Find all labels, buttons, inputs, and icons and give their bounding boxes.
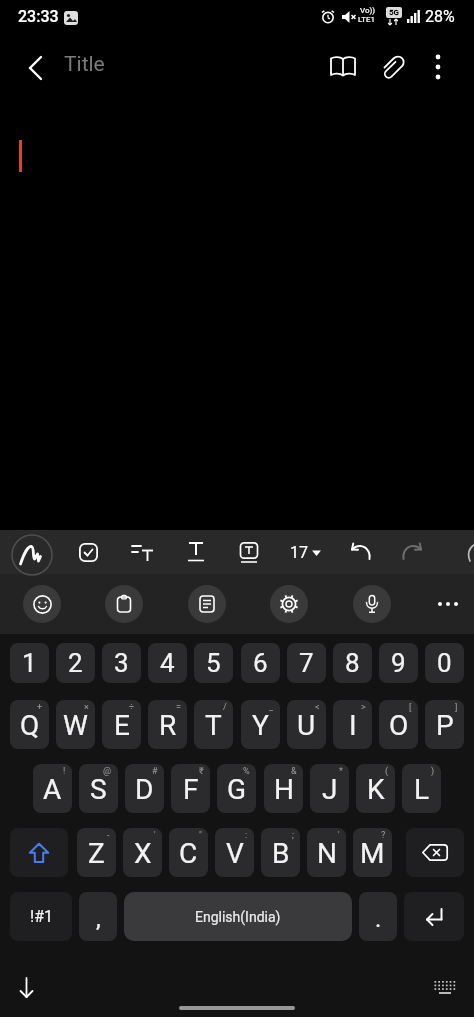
- staticText: .: [375, 905, 382, 933]
- button[interactable]: 6: [241, 643, 280, 683]
- button[interactable]: [10, 828, 68, 877]
- staticText: ]: [455, 702, 458, 713]
- button[interactable]: [123, 532, 163, 572]
- staticText: -: [107, 830, 110, 841]
- button[interactable]: [323, 47, 363, 87]
- staticText: :: [245, 830, 248, 841]
- button[interactable]: E: [102, 700, 141, 749]
- button[interactable]: L: [402, 764, 441, 813]
- button[interactable]: English(India): [124, 892, 352, 941]
- button[interactable]: Z: [77, 828, 116, 877]
- staticText: &: [291, 766, 297, 777]
- staticText: I: [349, 709, 357, 742]
- button[interactable]: H: [264, 764, 303, 813]
- staticText: 2: [68, 648, 83, 678]
- button[interactable]: 3: [102, 643, 141, 683]
- staticText: 23:33: [18, 7, 59, 26]
- button[interactable]: [229, 532, 269, 572]
- button[interactable]: [11, 534, 53, 576]
- button[interactable]: [188, 585, 226, 623]
- button[interactable]: [404, 892, 464, 941]
- button[interactable]: C: [169, 828, 208, 877]
- staticText: L: [414, 773, 430, 806]
- button[interactable]: R: [148, 700, 187, 749]
- button[interactable]: N: [307, 828, 346, 877]
- button[interactable]: P: [425, 700, 464, 749]
- button[interactable]: Q: [10, 700, 49, 749]
- button[interactable]: .: [359, 892, 397, 941]
- button[interactable]: G: [217, 764, 256, 813]
- staticText: 17: [290, 543, 308, 562]
- staticText: U: [297, 709, 316, 742]
- button[interactable]: K: [356, 764, 395, 813]
- button[interactable]: 8: [333, 643, 372, 683]
- button[interactable]: 0: [425, 643, 464, 683]
- staticText: 3: [114, 648, 129, 678]
- button[interactable]: W: [56, 700, 95, 749]
- button[interactable]: 1: [10, 643, 49, 683]
- button[interactable]: S: [79, 764, 118, 813]
- staticText: ×: [84, 702, 89, 713]
- button[interactable]: X: [123, 828, 162, 877]
- staticText: 0: [437, 648, 452, 678]
- button[interactable]: [393, 532, 433, 572]
- button[interactable]: [429, 585, 467, 623]
- staticText: P: [436, 709, 454, 742]
- button[interactable]: [105, 585, 143, 623]
- button[interactable]: [270, 585, 308, 623]
- button[interactable]: O: [379, 700, 418, 749]
- button[interactable]: B: [261, 828, 300, 877]
- button[interactable]: [176, 532, 216, 572]
- button[interactable]: [8, 968, 44, 1008]
- button[interactable]: [16, 48, 56, 88]
- button[interactable]: ,: [79, 892, 117, 941]
- staticText: LTE1: [358, 15, 376, 24]
- staticText: ,: [96, 905, 101, 933]
- button[interactable]: 9: [379, 643, 418, 683]
- button[interactable]: Y: [241, 700, 280, 749]
- button[interactable]: [372, 47, 412, 87]
- button[interactable]: A: [33, 764, 72, 813]
- staticText: 4: [160, 648, 175, 678]
- staticText: 28%: [425, 7, 455, 26]
- staticText: E: [114, 709, 130, 742]
- staticText: *: [339, 766, 343, 777]
- button[interactable]: [419, 47, 457, 87]
- button[interactable]: [68, 532, 108, 572]
- button[interactable]: 17: [283, 532, 327, 572]
- button[interactable]: [425, 970, 465, 1004]
- staticText: B: [272, 837, 290, 870]
- staticText: ;: [292, 830, 294, 841]
- button[interactable]: [340, 532, 380, 572]
- button[interactable]: 7: [287, 643, 326, 683]
- button[interactable]: J: [310, 764, 349, 813]
- button[interactable]: [353, 585, 391, 623]
- staticText: >: [361, 702, 366, 713]
- staticText: 1: [22, 648, 37, 678]
- staticText: K: [367, 773, 385, 806]
- button[interactable]: U: [287, 700, 326, 749]
- button[interactable]: T: [194, 700, 233, 749]
- button[interactable]: [406, 828, 464, 877]
- button[interactable]: [23, 585, 61, 623]
- button[interactable]: I: [333, 700, 372, 749]
- staticText: C: [179, 837, 198, 870]
- staticText: #: [152, 766, 158, 777]
- button[interactable]: V: [215, 828, 254, 877]
- button[interactable]: M: [353, 828, 392, 877]
- staticText: ': [154, 830, 156, 841]
- staticText: English(India): [195, 909, 281, 925]
- staticText: ÷: [129, 702, 135, 713]
- staticText: G: [227, 773, 247, 806]
- staticText: /: [223, 702, 227, 713]
- staticText: N: [317, 837, 337, 870]
- button[interactable]: 5: [194, 643, 233, 683]
- button[interactable]: 2: [56, 643, 95, 683]
- staticText: %: [243, 766, 250, 777]
- staticText: <: [315, 702, 320, 713]
- button[interactable]: F: [171, 764, 210, 813]
- button[interactable]: !#1: [10, 892, 72, 941]
- button[interactable]: D: [125, 764, 164, 813]
- button[interactable]: 4: [148, 643, 187, 683]
- staticText: H: [274, 773, 294, 806]
